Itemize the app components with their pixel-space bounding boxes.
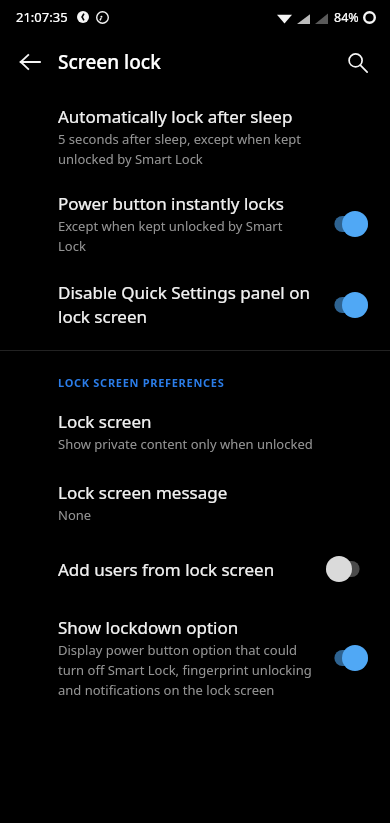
button[interactable]: Toggle off (324, 552, 370, 586)
staticText: 84% (334, 9, 359, 26)
staticText: Disable Quick Settings panel on lock scr… (58, 281, 312, 328)
button[interactable]: Toggle on (324, 288, 370, 322)
staticText: Lock screen (58, 410, 152, 433)
staticText: Add users from lock screen (58, 558, 275, 581)
staticText: Screen lock (58, 49, 161, 75)
staticText: None (58, 506, 92, 524)
staticText: Automatically lock after sleep (58, 105, 293, 128)
button[interactable]: Power button instantly locks (0, 190, 390, 257)
button[interactable]: Back (10, 42, 50, 82)
staticText: Show private content only when unlocked (58, 435, 313, 453)
button[interactable]: Lock screen message (0, 479, 390, 526)
staticText: 5 seconds after sleep, except when kept … (58, 130, 358, 168)
staticText: Lock screen message (58, 481, 228, 504)
staticText: LOCK SCREEN PREFERENCES (58, 375, 225, 390)
button[interactable]: Lock screen (0, 408, 390, 455)
button[interactable]: Add users from lock screen (0, 550, 390, 588)
button[interactable]: Automatically lock after sleep (0, 103, 390, 170)
button[interactable]: Disable Quick Settings panel on lock scr… (0, 279, 390, 330)
staticText: Display power button option that could t… (58, 641, 312, 699)
staticText: 21:07:35 (16, 8, 68, 26)
staticText: Show lockdown option (58, 616, 239, 639)
button[interactable]: Toggle on (324, 641, 370, 675)
button[interactable]: Show lockdown option (0, 614, 390, 701)
button[interactable]: Toggle on (324, 207, 370, 241)
staticText: Except when kept unlocked by Smart Lock (58, 217, 312, 255)
button[interactable]: Search (337, 42, 377, 82)
staticText: Power button instantly locks (58, 192, 284, 215)
